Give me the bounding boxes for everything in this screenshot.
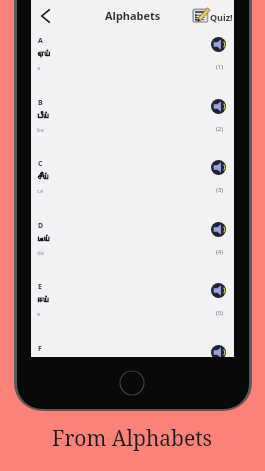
- staticText: E: [38, 282, 42, 292]
- staticText: (3): [216, 186, 224, 194]
- button[interactable]: Play sound: [211, 160, 226, 175]
- button[interactable]: B: [31, 97, 234, 159]
- staticText: F: [38, 344, 42, 354]
- staticText: டீய்: [37, 234, 49, 243]
- button[interactable]: Back: [33, 4, 57, 28]
- staticText: பீய்: [37, 111, 49, 120]
- staticText: be: [37, 126, 45, 134]
- staticText: From Alphabets: [52, 424, 213, 453]
- staticText: A: [38, 36, 43, 46]
- button[interactable]: D: [31, 220, 234, 282]
- staticText: Alphabets: [105, 8, 161, 23]
- button[interactable]: Play sound: [211, 345, 226, 357]
- button[interactable]: A: [31, 35, 234, 97]
- staticText: B: [38, 98, 43, 108]
- button[interactable]: C: [31, 158, 234, 220]
- staticText: (1): [216, 63, 224, 71]
- staticText: de: [37, 249, 45, 257]
- staticText: C: [38, 159, 43, 169]
- button[interactable]: Play sound: [211, 283, 226, 298]
- staticText: (4): [216, 248, 224, 256]
- staticText: Quiz!: [210, 11, 233, 23]
- button[interactable]: F: [31, 343, 234, 357]
- staticText: (2): [216, 125, 224, 133]
- staticText: சீய்: [37, 172, 48, 181]
- staticText: D: [38, 221, 44, 231]
- button[interactable]: Play sound: [211, 37, 226, 52]
- button[interactable]: Play sound: [211, 99, 226, 114]
- staticText: ஈய்: [37, 295, 49, 304]
- button[interactable]: Quiz!: [192, 8, 232, 23]
- button[interactable]: Play sound: [211, 222, 226, 237]
- staticText: (5): [216, 309, 224, 317]
- staticText: ce: [37, 187, 44, 195]
- staticText: a: [37, 64, 41, 72]
- staticText: ஏய்: [37, 49, 50, 58]
- staticText: e: [37, 310, 41, 318]
- button[interactable]: E: [31, 281, 234, 343]
